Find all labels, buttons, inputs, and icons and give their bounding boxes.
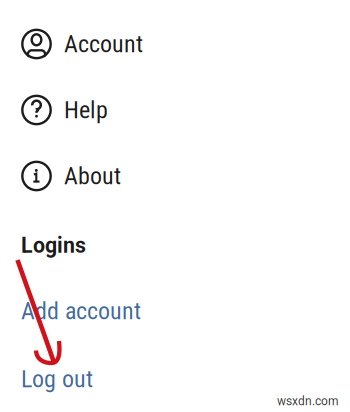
button[interactable]: Add account bbox=[21, 297, 171, 325]
staticText: Help bbox=[64, 96, 108, 124]
button[interactable]: About bbox=[0, 148, 350, 204]
staticText: Account bbox=[64, 30, 143, 58]
button[interactable]: Help bbox=[0, 82, 350, 138]
staticText: Logins bbox=[21, 233, 86, 258]
staticText: Log out bbox=[21, 365, 93, 393]
staticText: Add account bbox=[21, 297, 141, 325]
staticText: About bbox=[64, 162, 121, 190]
button[interactable]: Account bbox=[0, 16, 350, 72]
staticText: wsxdn.com bbox=[277, 394, 339, 408]
button[interactable]: Log out bbox=[21, 365, 121, 393]
